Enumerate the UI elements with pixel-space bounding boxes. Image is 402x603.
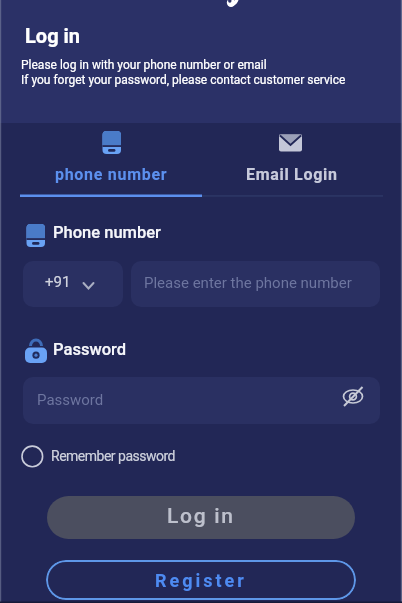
staticText: Password [53, 340, 127, 359]
staticText: +91 [45, 273, 71, 291]
button[interactable]: Register [46, 560, 356, 600]
button[interactable] [20, 444, 190, 469]
staticText: Remember password [51, 448, 175, 464]
button[interactable]: Log in [47, 496, 355, 539]
button[interactable] [23, 377, 380, 424]
staticText: phone number [55, 165, 168, 184]
staticText: Please log in with your phone number or … [21, 58, 267, 72]
staticText: Please enter the phone number [144, 274, 352, 292]
staticText: Password [37, 391, 104, 409]
staticText: If you forget your password, please cont… [21, 73, 346, 87]
button[interactable] [23, 261, 123, 307]
staticText: Email Login [246, 165, 338, 184]
staticText: Phone number [53, 223, 161, 242]
button[interactable] [131, 261, 380, 307]
button[interactable] [201, 123, 383, 198]
staticText: Register [155, 570, 247, 591]
button[interactable] [20, 123, 202, 198]
staticText: Log in [25, 24, 81, 47]
staticText: Log in [167, 504, 235, 529]
